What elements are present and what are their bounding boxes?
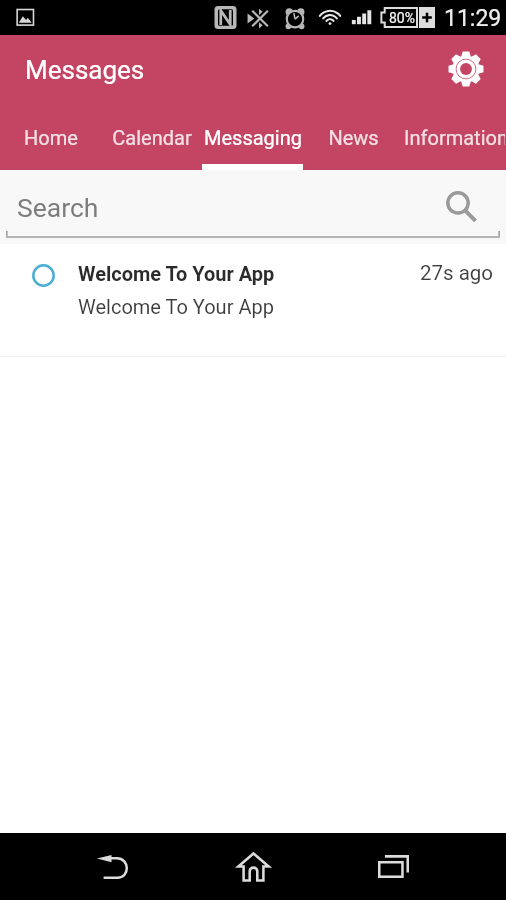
button[interactable]: Recent apps [353, 833, 433, 900]
staticText: 11:29 [444, 5, 502, 32]
staticText: News [328, 126, 379, 149]
button[interactable]: Back [73, 833, 153, 900]
staticText: Calendar [112, 126, 192, 149]
button[interactable]: Home [213, 833, 293, 900]
button[interactable]: Settings [442, 45, 490, 93]
staticText: Information [404, 126, 505, 149]
staticText: Search [17, 192, 99, 223]
staticText: 27s ago [420, 261, 494, 285]
staticText: Messages [25, 55, 145, 85]
button[interactable]: Search [440, 186, 482, 228]
button[interactable]: Information [404, 126, 505, 170]
staticText: 80% [389, 10, 415, 26]
button[interactable]: Calendar [101, 126, 202, 170]
button[interactable]: Home [0, 126, 101, 170]
button[interactable]: Messaging [202, 126, 303, 170]
staticText: Home [24, 126, 78, 149]
staticText: Messaging [204, 126, 302, 149]
staticText: Welcome To Your App [78, 262, 275, 285]
button[interactable]: News [303, 126, 404, 170]
staticText: Welcome To Your App [78, 295, 274, 318]
button[interactable]: Welcome To Your App [0, 244, 506, 357]
